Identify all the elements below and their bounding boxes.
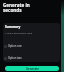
button[interactable]: Summary <box>3 23 60 62</box>
button[interactable]: Option one <box>3 44 60 48</box>
button[interactable]: Option two <box>3 56 60 60</box>
staticText: Option two <box>8 56 22 60</box>
staticText: A short description here <box>5 31 33 34</box>
staticText: Option one <box>8 44 22 48</box>
staticText: Generate in seconds <box>3 2 30 13</box>
staticText: Generate <box>26 67 39 71</box>
button[interactable]: Generate <box>5 66 59 71</box>
staticText: Summary <box>5 25 21 29</box>
